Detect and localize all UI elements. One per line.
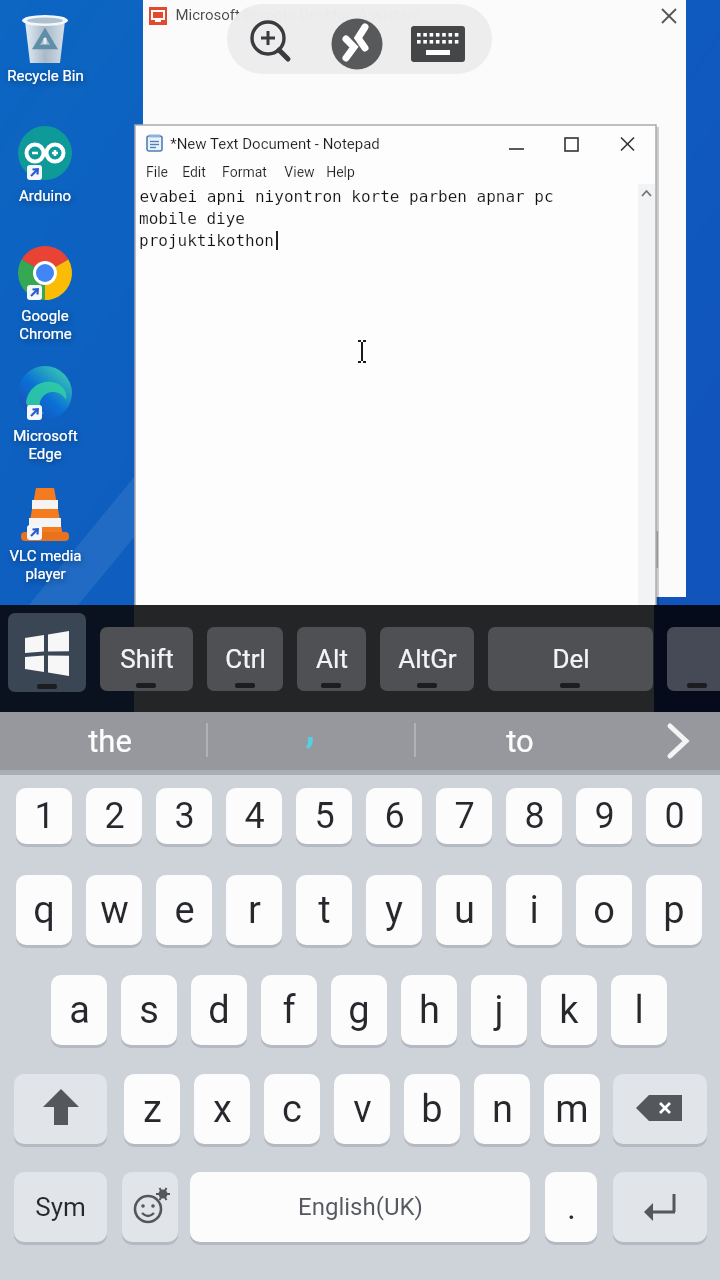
button[interactable]: r: [226, 875, 282, 945]
staticText: x: [213, 1087, 232, 1132]
staticText: Help: [326, 164, 355, 180]
button[interactable]: g: [331, 975, 387, 1045]
button[interactable]: [122, 1172, 178, 1242]
button[interactable]: [8, 613, 86, 692]
staticText: View: [284, 164, 315, 180]
staticText: Format: [222, 164, 267, 180]
button[interactable]: Shift: [100, 627, 193, 691]
staticText: File: [146, 164, 168, 180]
button[interactable]: [246, 17, 294, 65]
staticText: *New Text Document - Notepad: [170, 135, 380, 153]
button[interactable]: o: [576, 875, 632, 945]
button[interactable]: 5: [296, 788, 352, 844]
button[interactable]: h: [401, 975, 457, 1045]
button[interactable]: c: [264, 1074, 320, 1144]
button[interactable]: [660, 9, 678, 25]
staticText: 5: [314, 795, 335, 837]
staticText: Del: [552, 644, 590, 674]
staticText: m: [555, 1087, 589, 1132]
staticText: Sym: [35, 1192, 86, 1222]
staticText: 7: [454, 795, 475, 837]
button[interactable]: a: [51, 975, 107, 1045]
staticText: player: [25, 565, 66, 583]
staticText: Alt: [316, 644, 348, 674]
button[interactable]: y: [366, 875, 422, 945]
button[interactable]: 7: [436, 788, 492, 844]
button[interactable]: to: [430, 712, 610, 770]
button[interactable]: Ctrl: [207, 627, 283, 691]
button[interactable]: [613, 1074, 707, 1144]
staticText: v: [353, 1087, 372, 1132]
staticText: projuktikothon: [139, 231, 274, 250]
button[interactable]: t: [296, 875, 352, 945]
button[interactable]: v: [334, 1074, 390, 1144]
staticText: VLC media: [9, 547, 82, 565]
button[interactable]: 6: [366, 788, 422, 844]
button[interactable]: m: [544, 1074, 600, 1144]
staticText: d: [208, 988, 230, 1033]
staticText: t: [318, 888, 331, 933]
button[interactable]: x: [194, 1074, 250, 1144]
button[interactable]: e: [156, 875, 212, 945]
staticText: evabei apni niyontron korte parben apnar…: [139, 187, 554, 206]
button[interactable]: [411, 26, 465, 64]
staticText: f: [282, 988, 296, 1033]
button[interactable]: the: [20, 712, 200, 770]
button[interactable]: 3: [156, 788, 212, 844]
button[interactable]: [505, 136, 645, 154]
button[interactable]: q: [16, 875, 72, 945]
button[interactable]: l: [611, 975, 667, 1045]
button[interactable]: [14, 1074, 107, 1144]
button[interactable]: [613, 1172, 707, 1242]
button[interactable]: 0: [646, 788, 702, 844]
button[interactable]: ,: [220, 698, 400, 756]
button[interactable]: f: [261, 975, 317, 1045]
button[interactable]: s: [121, 975, 177, 1045]
button[interactable]: n: [474, 1074, 530, 1144]
button[interactable]: u: [436, 875, 492, 945]
staticText: English(UK): [298, 1193, 423, 1221]
button[interactable]: Alt: [297, 627, 366, 691]
button[interactable]: English(UK): [190, 1172, 530, 1242]
staticText: g: [348, 988, 370, 1033]
staticText: Shift: [120, 644, 174, 674]
button[interactable]: 4: [226, 788, 282, 844]
staticText: ,: [305, 703, 315, 752]
button[interactable]: z: [124, 1074, 180, 1144]
button[interactable]: w: [86, 875, 142, 945]
staticText: AltGr: [398, 644, 457, 674]
staticText: Google: [21, 307, 69, 325]
staticText: o: [593, 888, 615, 933]
button[interactable]: 9: [576, 788, 632, 844]
staticText: a: [69, 988, 90, 1033]
button[interactable]: d: [191, 975, 247, 1045]
staticText: the: [88, 723, 132, 759]
staticText: Microsoft Remote Desktop Assistant: [175, 6, 421, 24]
button[interactable]: j: [471, 975, 527, 1045]
staticText: 3: [174, 795, 195, 837]
staticText: Edit: [182, 164, 206, 180]
staticText: 4: [244, 795, 265, 837]
button[interactable]: p: [646, 875, 702, 945]
button[interactable]: [329, 16, 381, 68]
button[interactable]: [667, 627, 720, 691]
staticText: j: [494, 988, 504, 1033]
button[interactable]: 8: [506, 788, 562, 844]
button[interactable]: k: [541, 975, 597, 1045]
staticText: l: [634, 988, 644, 1033]
staticText: w: [100, 888, 129, 933]
staticText: c: [282, 1087, 302, 1132]
button[interactable]: i: [506, 875, 562, 945]
staticText: Chrome: [19, 325, 72, 343]
button[interactable]: b: [404, 1074, 460, 1144]
button[interactable]: [660, 718, 700, 764]
button[interactable]: 1: [16, 788, 72, 844]
button[interactable]: Sym: [14, 1172, 107, 1242]
button[interactable]: Del: [488, 627, 653, 691]
staticText: Recycle Bin: [7, 67, 84, 85]
staticText: y: [385, 888, 403, 933]
button[interactable]: 2: [86, 788, 142, 844]
button[interactable]: AltGr: [380, 627, 474, 691]
staticText: to: [506, 723, 534, 759]
button[interactable]: .: [545, 1172, 597, 1242]
